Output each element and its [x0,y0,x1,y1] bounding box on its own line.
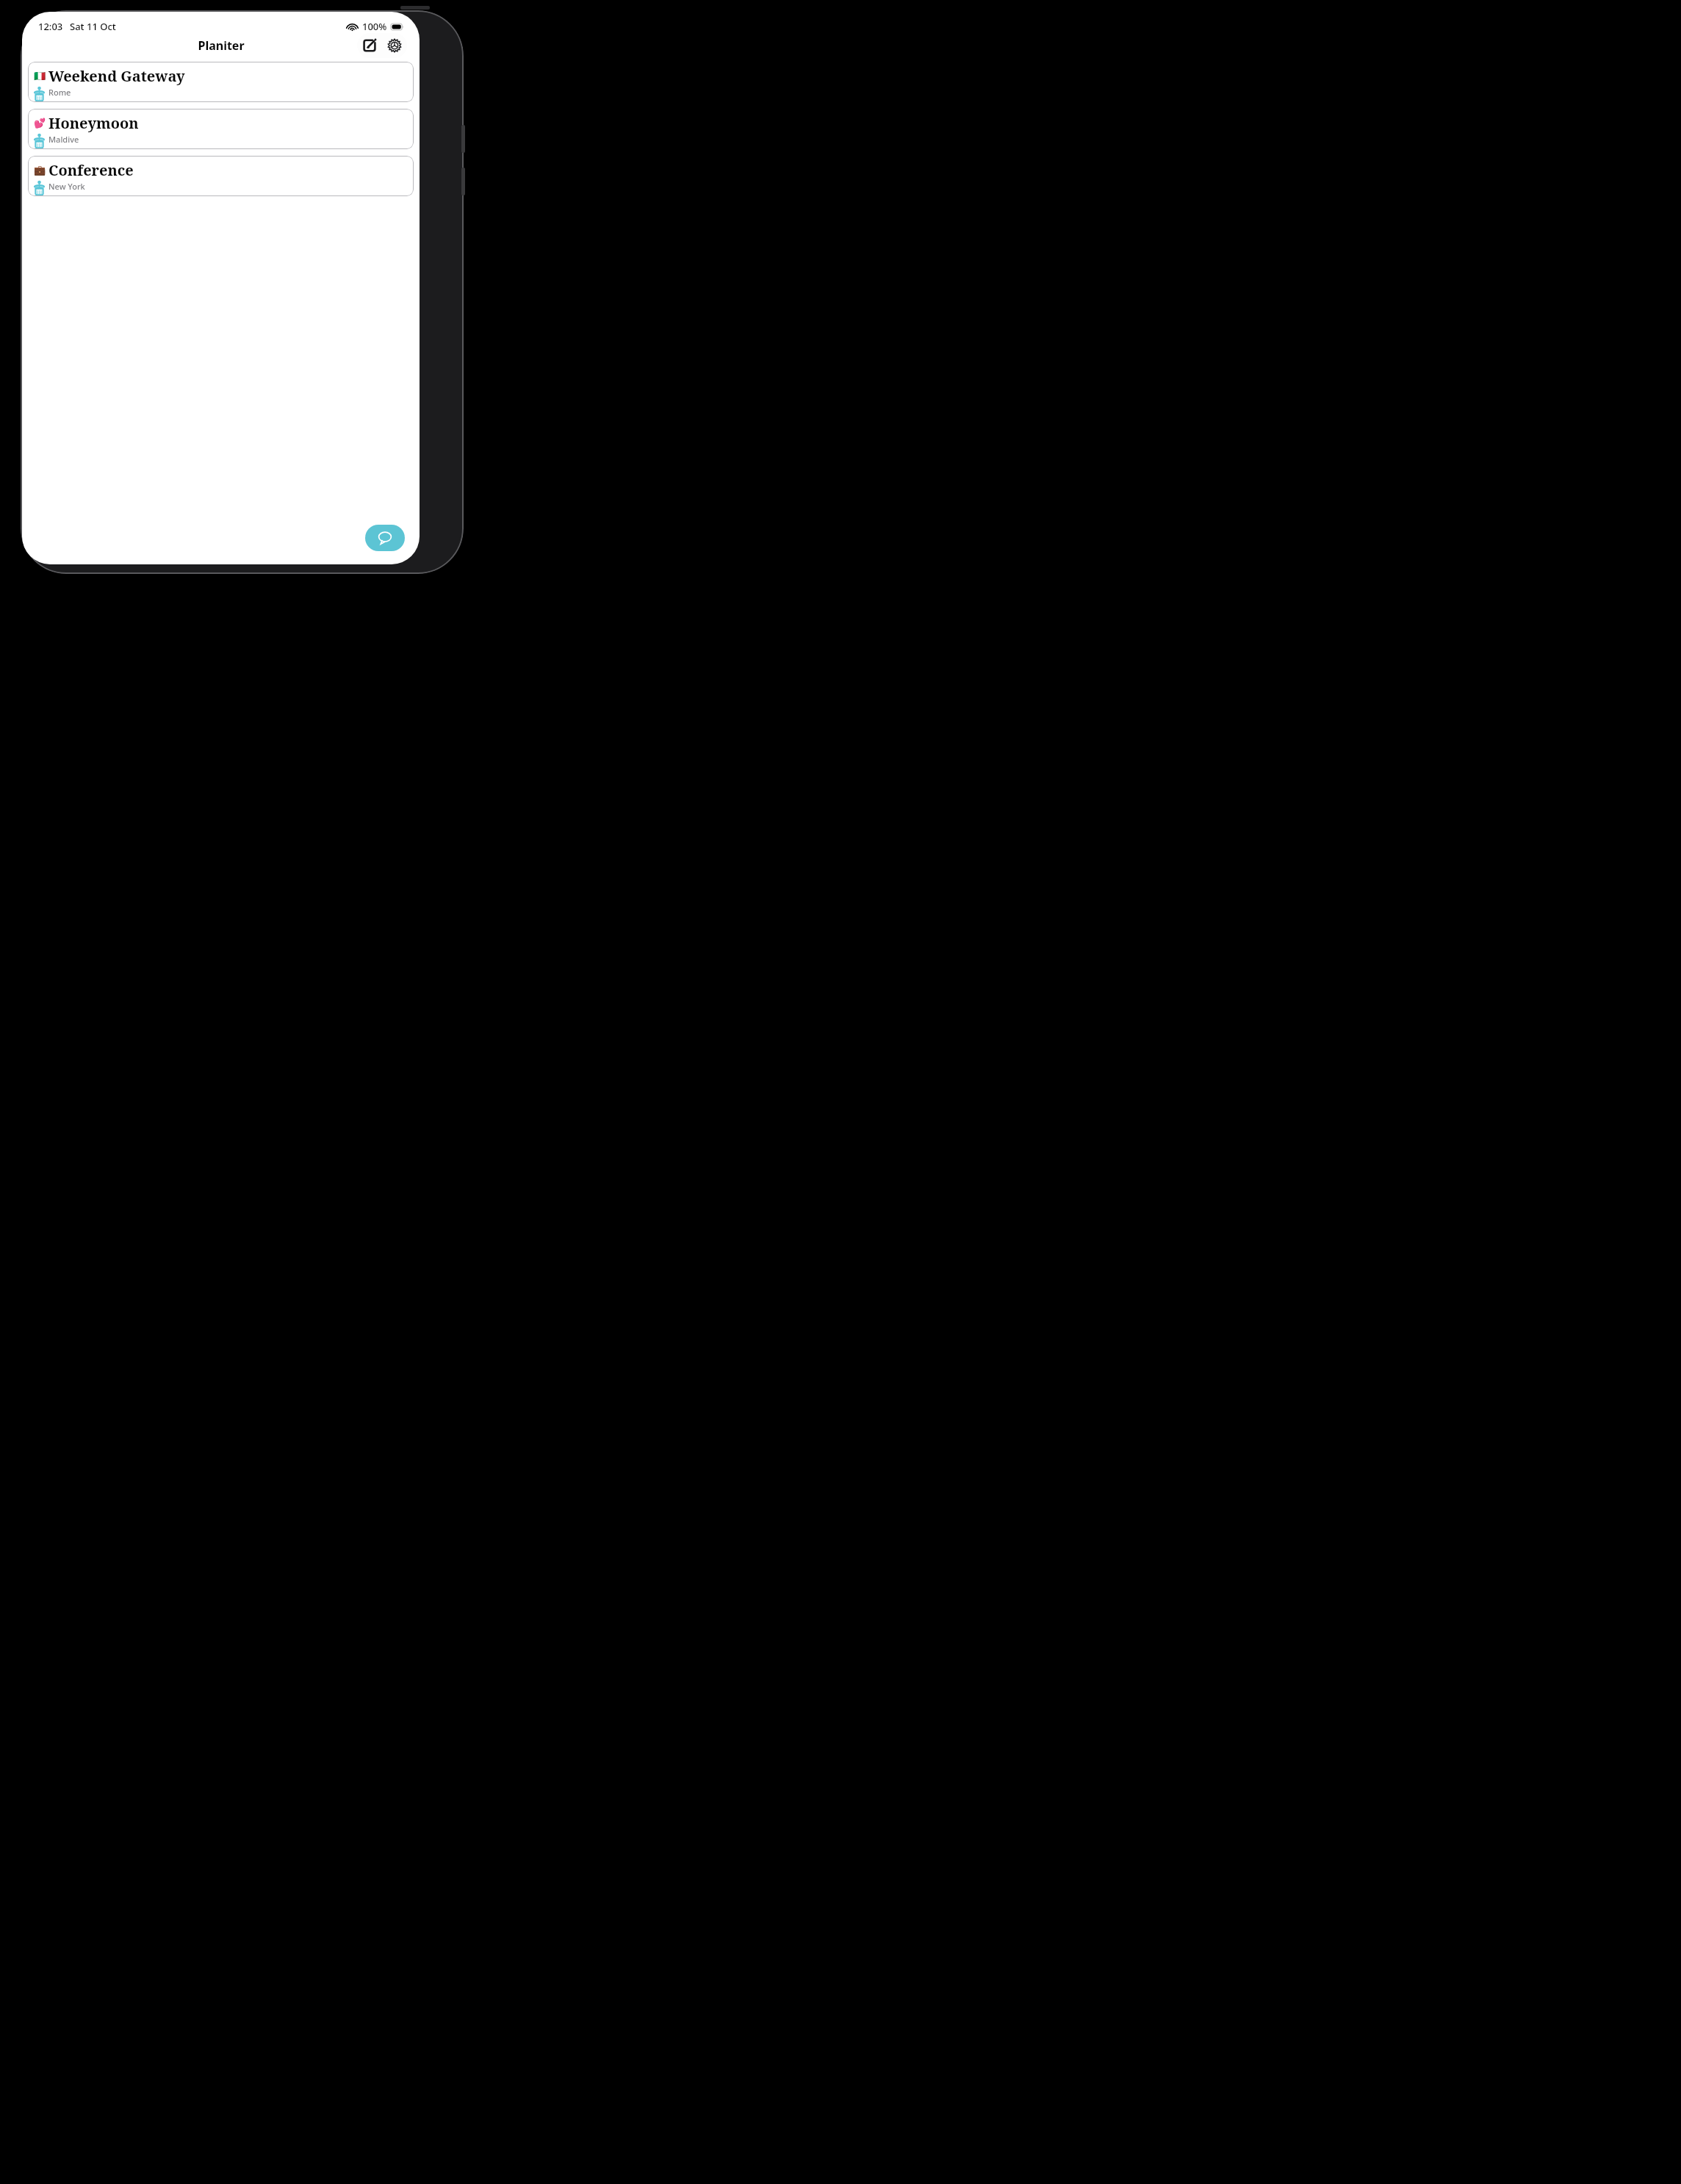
staticText: Honeymoon [48,113,139,133]
staticText: 100% [362,20,387,33]
button[interactable]: 💼 [28,156,414,196]
staticText: 💕 [34,118,46,129]
staticText: Rome [48,87,71,98]
staticText: New York [48,181,85,192]
staticText: Planiter [198,37,245,54]
button[interactable]: 💕 [28,109,414,149]
button[interactable]: New trip [357,33,382,58]
button[interactable]: Settings [382,33,407,58]
staticText: Conference [48,160,134,180]
staticText: 12:03 [38,20,63,33]
staticText: Weekend Gateway [48,66,185,86]
staticText: 💼 [34,165,46,176]
button[interactable]: 🇮🇹 [28,62,414,102]
staticText: Maldive [48,134,79,145]
staticText: Sat 11 Oct [70,20,116,33]
button[interactable]: Chat support [365,525,405,551]
staticText: 🇮🇹 [34,71,46,82]
